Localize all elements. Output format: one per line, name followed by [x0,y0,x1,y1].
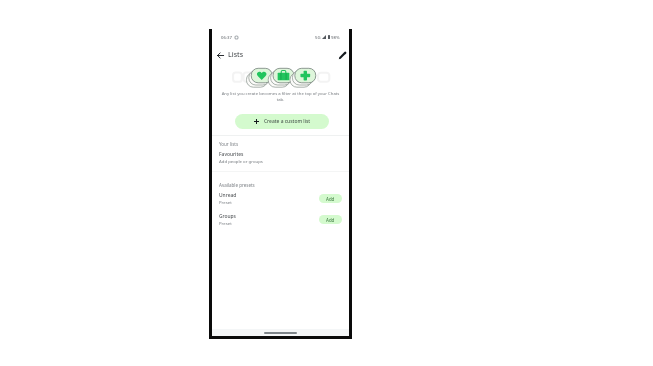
button[interactable]: Favourites [212,148,349,165]
staticText: Add [326,196,335,202]
staticText: Groups [219,213,236,220]
staticText: 5G [315,34,321,40]
staticText: Preset [219,220,232,226]
staticText: 98% [331,34,340,40]
button[interactable]: Create a custom list [235,114,329,129]
button[interactable]: Back [214,49,227,62]
staticText: Create a custom list [264,118,311,125]
staticText: Available presets [219,182,255,188]
button[interactable]: Add [319,194,342,203]
staticText: Add people or groups [219,158,263,164]
button[interactable]: Edit [335,49,348,62]
staticText: Preset [219,199,232,205]
staticText: Lists [228,50,244,60]
staticText: Any list you create becomes a filter at … [221,90,340,102]
button[interactable]: Groups [212,210,349,227]
staticText: Add [326,217,335,223]
button[interactable]: Unread [212,189,349,206]
staticText: Favourites [219,151,244,158]
staticText: Unread [219,192,237,199]
staticText: Your lists [219,141,239,147]
button[interactable]: Add [319,215,342,224]
staticText: 06:37 [221,34,232,40]
